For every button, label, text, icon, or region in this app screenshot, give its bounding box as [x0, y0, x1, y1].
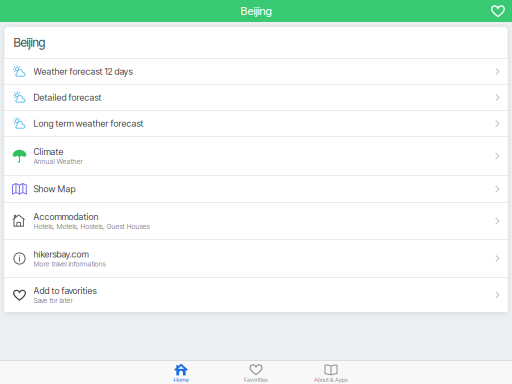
staticText: Favorities — [244, 376, 268, 383]
staticText: Save for later — [33, 296, 72, 305]
staticText: Beijing — [13, 35, 45, 50]
staticText: About & Apps — [314, 376, 348, 383]
button[interactable]: hikersbay.com — [4, 240, 507, 277]
button[interactable]: Climate — [4, 137, 507, 175]
staticText: Climate — [33, 146, 63, 157]
button[interactable]: Home — [143, 361, 218, 384]
staticText: Long term weather forecast — [33, 118, 143, 129]
staticText: Detailed forecast — [33, 92, 101, 103]
staticText: Home — [173, 376, 188, 383]
button[interactable]: Add to favorities — [4, 278, 507, 312]
button[interactable]: Show Map — [4, 176, 507, 202]
staticText: Add to favorities — [33, 285, 96, 296]
button[interactable]: Add to favorites — [487, 0, 509, 22]
button[interactable]: Weather forecast 12 days — [4, 59, 507, 84]
button[interactable]: Long term weather forecast — [4, 111, 507, 136]
button[interactable]: About & Apps — [293, 361, 368, 384]
staticText: hikersbay.com — [33, 249, 88, 260]
button[interactable]: Detailed forecast — [4, 85, 507, 110]
staticText: Hotels, Motels, Hostels, Guest Houses — [33, 222, 149, 231]
staticText: Annual Weather — [33, 157, 82, 166]
staticText: Beijing — [240, 4, 271, 18]
staticText: Show Map — [33, 184, 75, 194]
staticText: More travel informations — [33, 260, 105, 268]
staticText: Accommodation — [33, 211, 98, 222]
staticText: Weather forecast 12 days — [33, 66, 132, 77]
button[interactable]: Favorities — [218, 361, 293, 384]
button[interactable]: Accommodation — [4, 203, 507, 239]
